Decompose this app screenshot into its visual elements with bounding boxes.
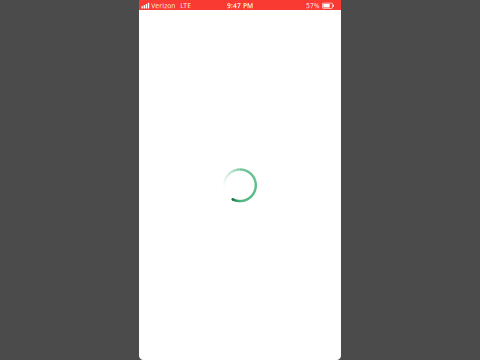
staticText: 9:47 PM <box>227 1 253 10</box>
staticText: 57% <box>306 1 320 10</box>
staticText: Verizon <box>151 1 175 10</box>
staticText: LTE <box>180 1 191 10</box>
